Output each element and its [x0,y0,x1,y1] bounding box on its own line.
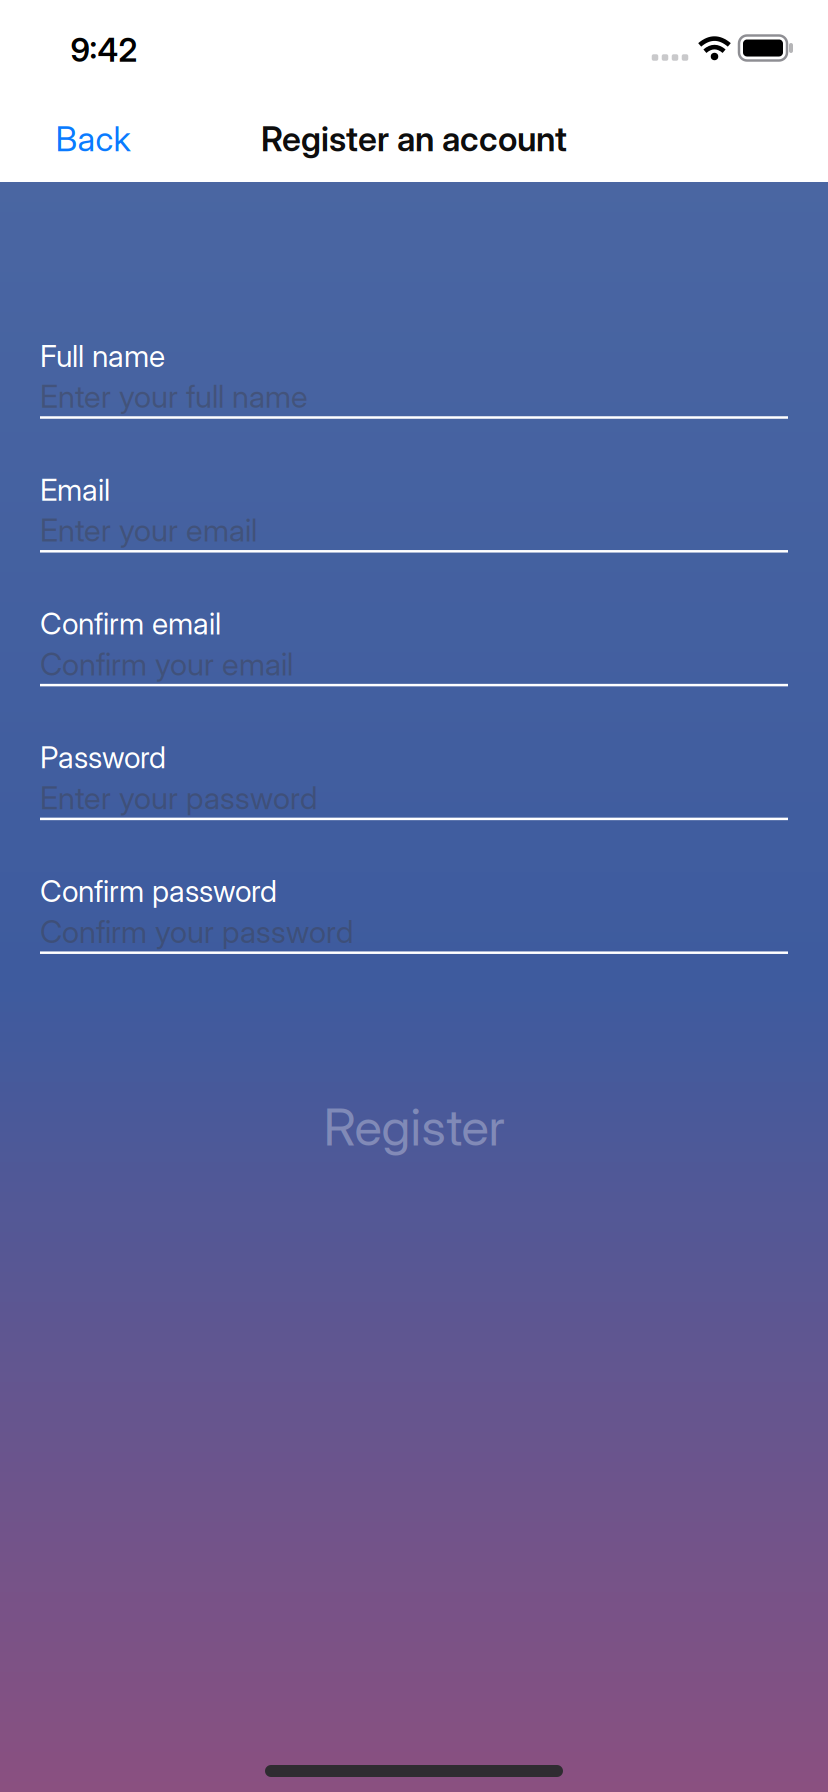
staticText: 9:42 [70,31,137,69]
staticText: Enter your full name [40,378,308,415]
staticText: Enter your password [40,780,318,816]
staticText: Enter your email [40,512,257,549]
button[interactable]: Back [55,119,130,159]
staticText: Full name [40,338,165,374]
staticText: Email [40,472,110,507]
button[interactable]: Confirm your password [40,903,788,961]
button[interactable]: Enter your password [40,769,788,827]
staticText: Confirm your email [40,646,293,682]
staticText: Register an account [261,119,567,159]
staticText: Register [323,1097,504,1157]
staticText: Password [40,740,166,775]
staticText: Confirm password [40,873,277,909]
button[interactable]: Confirm your email [40,635,788,693]
button[interactable]: Enter your full name [40,367,788,425]
staticText: Back [55,119,130,159]
staticText: Confirm email [40,606,221,641]
button[interactable]: Enter your email [40,501,788,559]
staticText: Confirm your password [40,913,354,950]
button[interactable]: Register [323,1097,504,1157]
